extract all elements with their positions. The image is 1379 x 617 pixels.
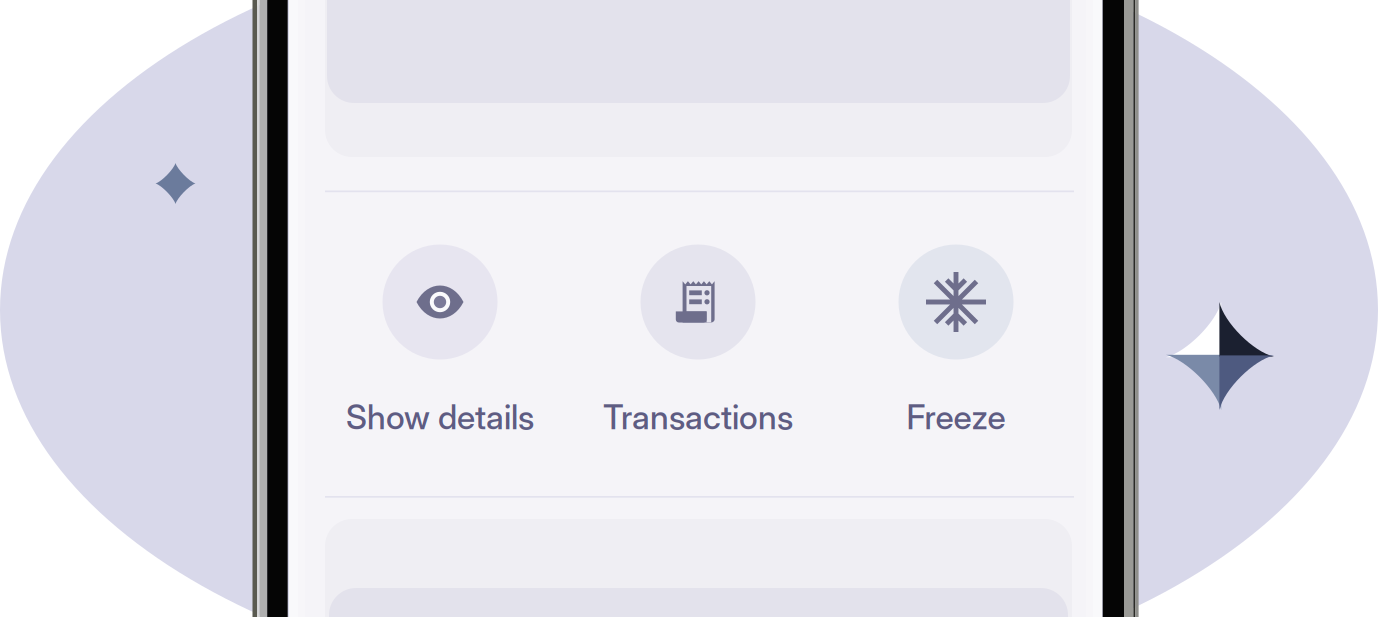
- staticText: Show details: [346, 397, 534, 437]
- button[interactable]: Transactions: [0, 0, 1379, 617]
- button[interactable]: Freeze: [0, 0, 1379, 617]
- button[interactable]: Show details: [0, 0, 1379, 617]
- staticText: Transactions: [603, 397, 793, 437]
- staticText: Freeze: [906, 397, 1005, 437]
